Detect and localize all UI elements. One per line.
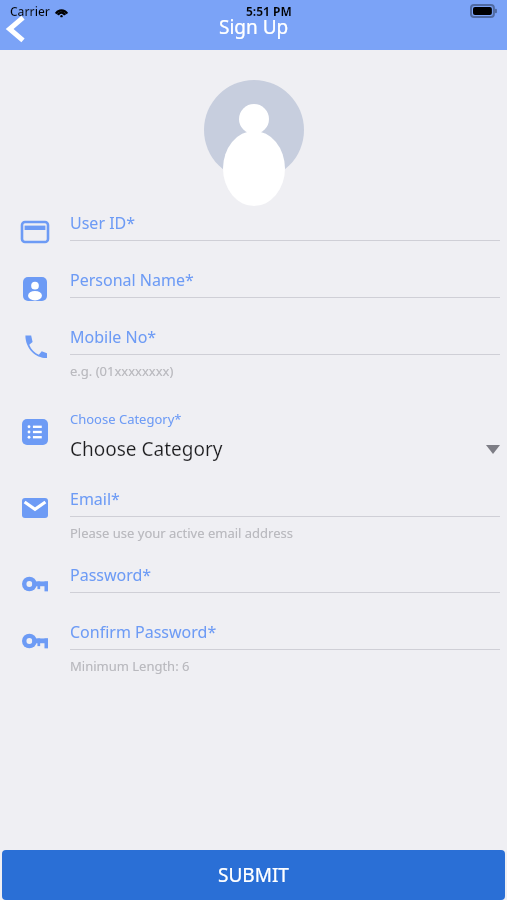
staticText: Choose Category (70, 436, 486, 462)
button[interactable]: Back (6, 16, 26, 42)
button[interactable]: Email* (0, 488, 507, 564)
staticText: Personal Name* (70, 269, 194, 291)
staticText: Choose Category* (70, 410, 182, 428)
button[interactable]: Password* (0, 564, 507, 621)
staticText: Mobile No* (70, 326, 157, 348)
staticText: SUBMIT (218, 862, 289, 888)
button[interactable]: SUBMIT (2, 850, 505, 900)
button[interactable]: Mobile No* (0, 326, 507, 402)
staticText: e.g. (01xxxxxxxx) (70, 362, 174, 380)
staticText: User ID* (70, 212, 136, 234)
staticText: Email* (70, 488, 120, 510)
staticText: Carrier (10, 3, 50, 19)
staticText: Confirm Password* (70, 621, 217, 643)
staticText: 5:51 PM (246, 3, 292, 19)
staticText: Password* (70, 564, 152, 586)
staticText: Please use your active email address (70, 524, 293, 542)
staticText: Sign Up (219, 14, 289, 40)
button[interactable]: Personal Name* (0, 269, 507, 326)
button[interactable]: Confirm Password* (0, 621, 507, 697)
button[interactable]: User ID* (0, 212, 507, 269)
staticText: Minimum Length: 6 (70, 657, 190, 675)
button[interactable]: Choose Category* (0, 402, 507, 488)
